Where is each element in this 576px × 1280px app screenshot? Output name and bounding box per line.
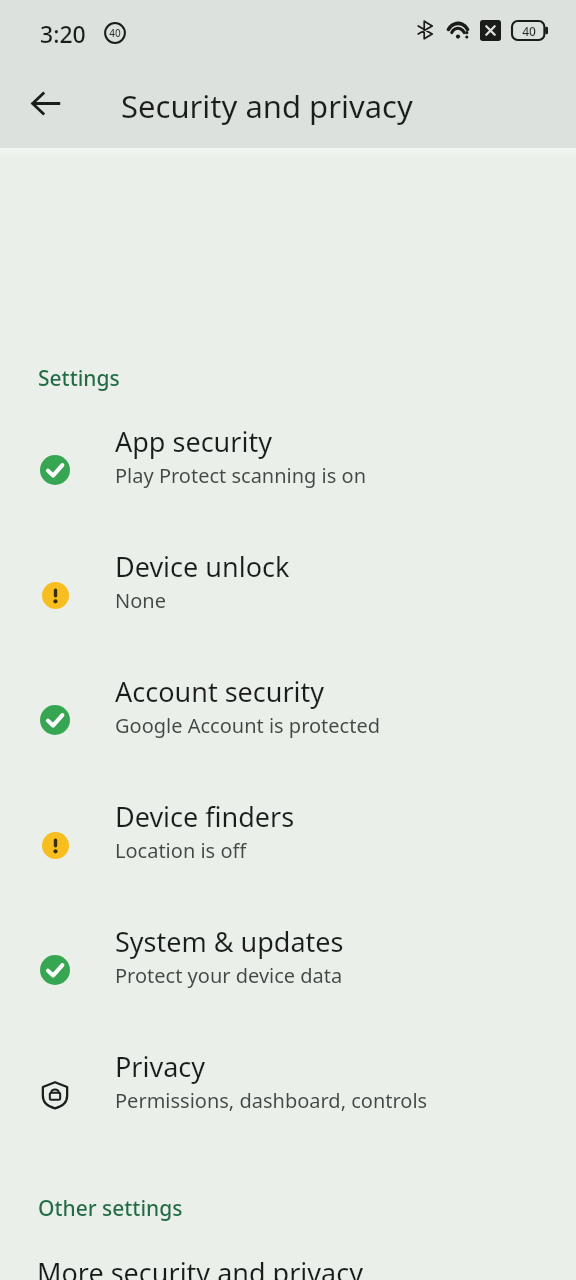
- button[interactable]: Back: [17, 75, 73, 131]
- staticText: 40: [522, 23, 536, 39]
- staticText: App security: [115, 423, 272, 460]
- staticText: Location is off: [115, 837, 247, 864]
- button[interactable]: Privacy: [0, 1044, 576, 1148]
- staticText: Protect your device data: [115, 962, 343, 989]
- button[interactable]: App security: [0, 419, 576, 523]
- staticText: Device unlock: [115, 548, 290, 585]
- staticText: 40: [109, 26, 121, 40]
- button[interactable]: Device finders: [0, 794, 576, 898]
- button[interactable]: Account security: [0, 669, 576, 773]
- staticText: Play Protect scanning is on: [115, 462, 366, 489]
- staticText: 3:20: [40, 18, 86, 49]
- button[interactable]: Device unlock: [0, 544, 576, 648]
- staticText: Other settings: [38, 1194, 183, 1223]
- staticText: Security and privacy: [121, 85, 413, 127]
- button[interactable]: More security and privacy: [0, 1250, 576, 1280]
- staticText: Account security: [115, 673, 325, 710]
- staticText: Settings: [38, 364, 120, 393]
- button[interactable]: System & updates: [0, 919, 576, 1023]
- staticText: Google Account is protected: [115, 712, 381, 739]
- staticText: System & updates: [115, 923, 344, 960]
- staticText: More security and privacy: [37, 1254, 363, 1280]
- staticText: Privacy: [115, 1048, 206, 1085]
- staticText: Permissions, dashboard, controls: [115, 1087, 428, 1114]
- staticText: None: [115, 587, 166, 614]
- staticText: Device finders: [115, 798, 295, 835]
